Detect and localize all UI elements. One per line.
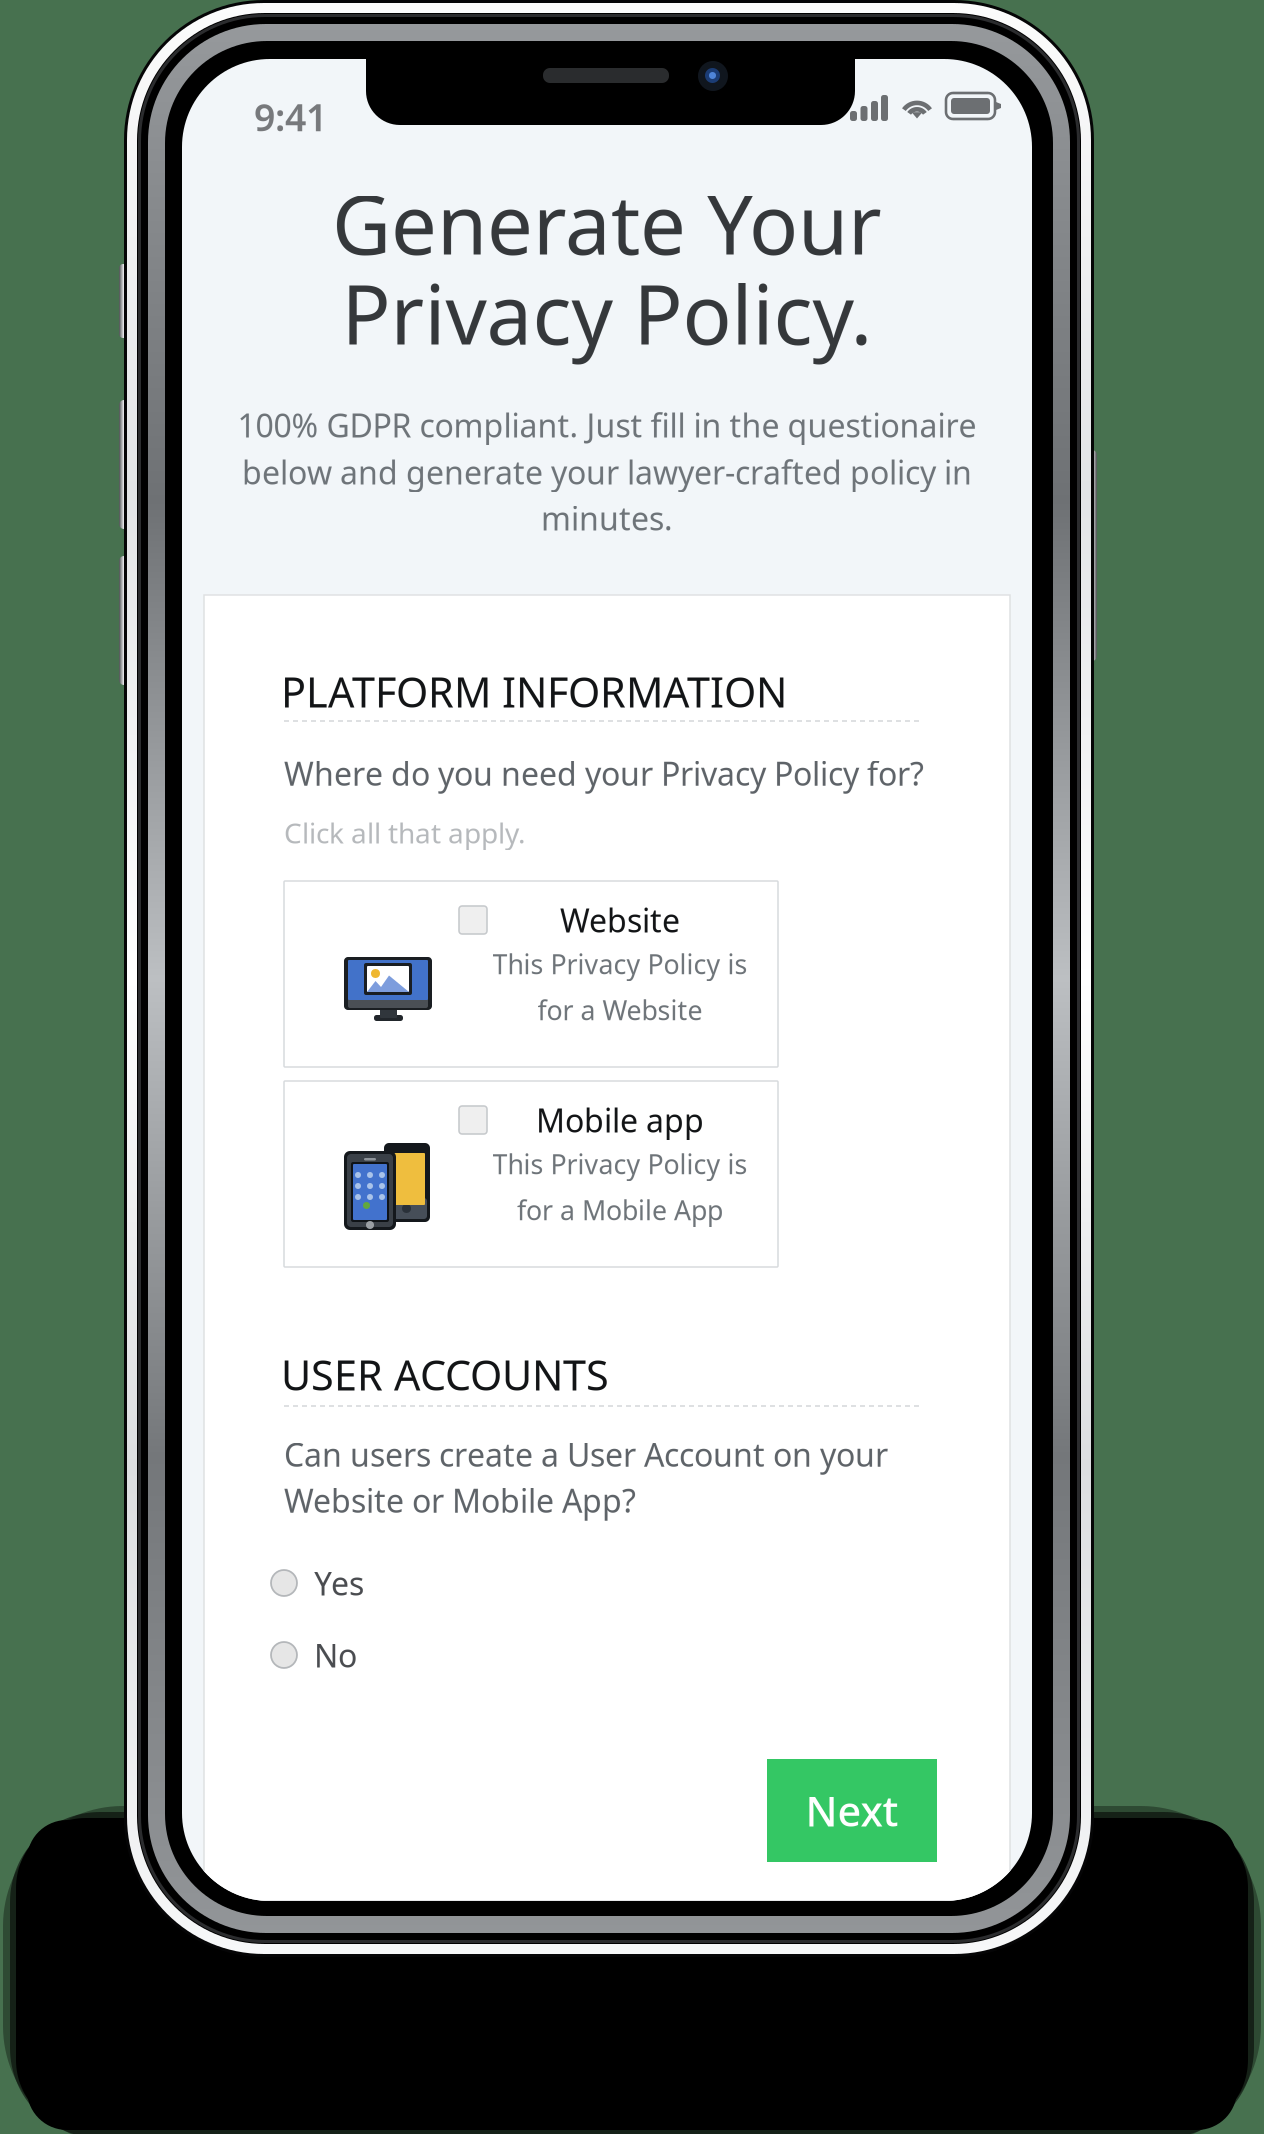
staticText: This Privacy Policy is <box>492 946 747 982</box>
staticText: Privacy Policy. <box>341 259 872 367</box>
staticText: Where do you need your Privacy Policy fo… <box>284 752 924 794</box>
staticText: Next <box>805 1783 898 1838</box>
staticText: USER ACCOUNTS <box>281 1347 609 1402</box>
staticText: below and generate your lawyer-crafted p… <box>242 451 972 493</box>
staticText: No <box>314 1634 357 1676</box>
button[interactable]: Next <box>767 1759 937 1862</box>
button[interactable]: Website <box>284 881 778 1067</box>
staticText: 9:41 <box>254 92 327 142</box>
button[interactable]: Mobile app <box>284 1081 778 1267</box>
staticText: Yes <box>314 1562 364 1604</box>
staticText: Generate Your <box>332 169 882 277</box>
staticText: Website or Mobile App? <box>284 1479 636 1521</box>
staticText: for a Mobile App <box>517 1192 723 1228</box>
staticText: Click all that apply. <box>284 814 526 851</box>
staticText: Can users create a User Account on your <box>284 1433 888 1475</box>
staticText: minutes. <box>541 497 673 539</box>
staticText: 100% GDPR compliant. Just fill in the qu… <box>237 404 976 446</box>
button[interactable]: Yes <box>271 1563 364 1603</box>
staticText: Mobile app <box>536 1099 704 1141</box>
button[interactable]: No <box>271 1635 357 1675</box>
staticText: PLATFORM INFORMATION <box>281 664 787 719</box>
staticText: This Privacy Policy is <box>492 1146 747 1182</box>
staticText: Website <box>560 899 680 941</box>
staticText: for a Website <box>537 992 702 1028</box>
